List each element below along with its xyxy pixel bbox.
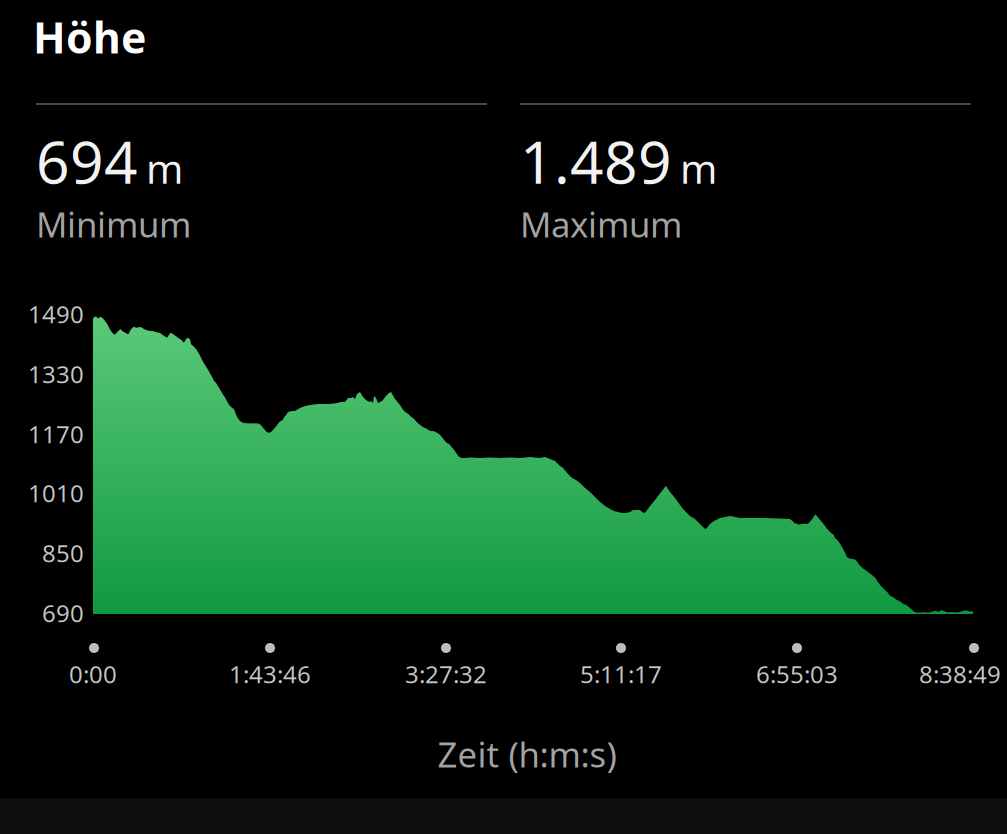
staticText: 0:00	[69, 658, 117, 690]
staticText: 690	[42, 597, 84, 629]
staticText: 6:55:03	[756, 658, 838, 690]
button[interactable]: 694	[36, 103, 487, 263]
staticText: 3:27:32	[405, 658, 487, 690]
staticText: Maximum	[520, 201, 682, 247]
staticText: 5:11:17	[580, 658, 662, 690]
staticText: 1490	[28, 298, 84, 330]
staticText: 8:38:49	[919, 658, 1001, 690]
staticText: 1170	[28, 418, 84, 450]
staticText: 1:43:46	[229, 658, 311, 690]
staticText: Höhe	[33, 9, 146, 65]
staticText: m	[680, 142, 717, 195]
staticText: 850	[42, 537, 84, 569]
staticText: 1010	[28, 477, 84, 509]
staticText: Minimum	[36, 201, 191, 247]
staticText: Zeit (h:m:s)	[437, 731, 616, 777]
staticText: 694	[36, 122, 138, 200]
staticText: m	[146, 142, 183, 195]
button[interactable]: 1.489	[520, 103, 971, 263]
staticText: 1330	[28, 358, 84, 390]
staticText: 1.489	[520, 122, 672, 200]
